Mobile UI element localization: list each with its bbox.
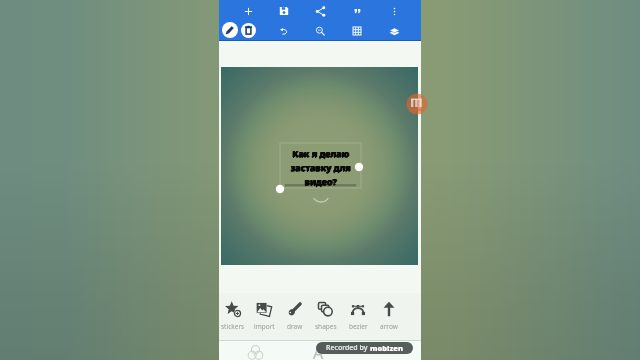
button[interactable]: More options (384, 1, 404, 21)
staticText: заставку для (280, 161, 361, 173)
staticText: import (254, 322, 275, 331)
button[interactable]: Colors (246, 343, 264, 360)
button[interactable]: Grid (347, 21, 367, 41)
staticText: Как я делаю (280, 147, 361, 159)
staticText: заставку для (280, 161, 361, 173)
staticText: Recorded by (326, 343, 370, 353)
staticText: draw (287, 322, 303, 331)
button[interactable]: Delete (238, 20, 258, 40)
button[interactable]: Quote (347, 1, 367, 21)
staticText: видео? (281, 175, 362, 187)
button[interactable]: Share (310, 1, 330, 21)
staticText: заставку для (280, 162, 361, 174)
button[interactable]: Pen tool (220, 20, 240, 40)
staticText: видео? (280, 175, 361, 187)
staticText: Как я делаю (280, 147, 361, 159)
staticText: stickers (221, 322, 245, 331)
staticText: заставку для (280, 161, 361, 173)
button[interactable]: Undo (274, 21, 294, 41)
button[interactable]: bezier (342, 301, 374, 331)
staticText: видео? (280, 176, 361, 188)
button[interactable]: Save (274, 1, 294, 21)
staticText: A (313, 342, 324, 360)
button[interactable]: Zoom (310, 21, 330, 41)
staticText: Как я делаю (280, 148, 361, 160)
button[interactable]: Text tool (309, 342, 327, 360)
staticText: arrow (380, 322, 398, 331)
staticText: видео? (280, 175, 361, 187)
staticText: mobizen (370, 343, 403, 353)
button[interactable]: arrow (373, 301, 405, 331)
button[interactable]: shapes (310, 301, 342, 331)
staticText: видео? (280, 175, 361, 187)
button[interactable]: stickers (217, 301, 249, 331)
staticText: заставку для (281, 161, 362, 173)
staticText: Как я делаю (281, 147, 362, 159)
button[interactable]: draw (279, 301, 311, 331)
staticText: Как я делаю (280, 147, 361, 159)
button[interactable]: Layers (384, 21, 404, 41)
button[interactable]: import (248, 301, 280, 331)
button[interactable]: Add (238, 1, 258, 21)
staticText: shapes (315, 322, 337, 331)
staticText: bezier (349, 322, 368, 331)
